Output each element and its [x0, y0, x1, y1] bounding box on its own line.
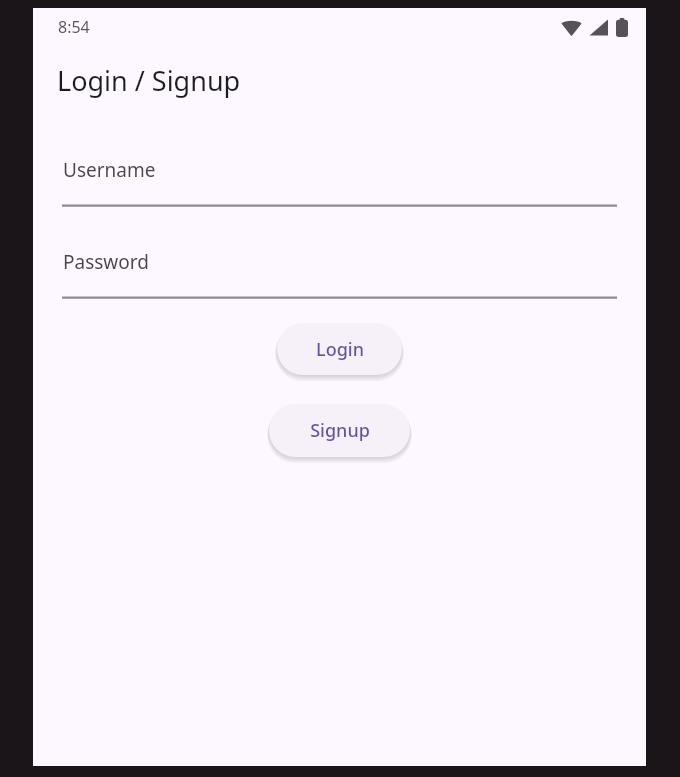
button[interactable]: Username — [62, 157, 617, 207]
button[interactable]: Signup — [269, 404, 410, 457]
staticText: Password — [63, 249, 149, 275]
staticText: Login — [316, 337, 364, 362]
staticText: 8:54 — [58, 16, 90, 38]
staticText: Username — [63, 157, 156, 183]
staticText: Signup — [310, 418, 370, 443]
button[interactable]: Login — [277, 323, 402, 375]
button[interactable]: Password — [62, 249, 617, 299]
staticText: Login / Signup — [57, 62, 241, 99]
